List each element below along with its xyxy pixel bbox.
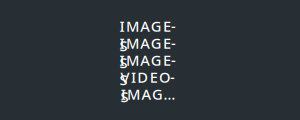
staticText: IMAGES — [119, 33, 180, 53]
staticText: IMAGES — [121, 84, 179, 104]
staticText: IMAGES — [119, 50, 180, 70]
staticText: IMAGES — [119, 16, 180, 36]
staticText: VIDEOS — [120, 67, 179, 87]
